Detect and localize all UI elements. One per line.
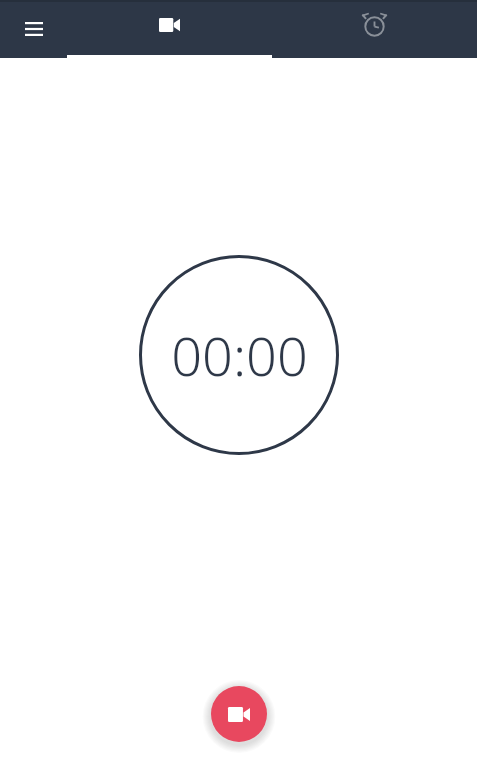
button[interactable]: Start video recording bbox=[211, 686, 267, 742]
button[interactable]: Timer 00:00 bbox=[139, 255, 339, 455]
button[interactable]: Video recorder tab bbox=[67, 0, 272, 58]
staticText: 00:00 bbox=[171, 318, 308, 392]
button[interactable]: Alarm tab bbox=[272, 0, 477, 58]
button[interactable]: Open navigation menu bbox=[0, 0, 67, 58]
